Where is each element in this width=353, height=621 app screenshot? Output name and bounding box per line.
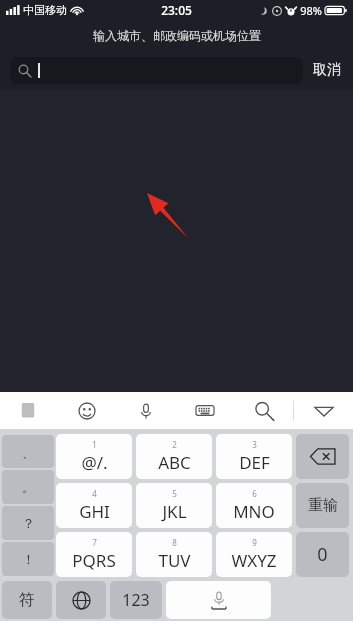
staticText: 重输 bbox=[308, 496, 338, 515]
button[interactable]: Search bbox=[234, 392, 293, 429]
staticText: 9 bbox=[252, 537, 257, 548]
staticText: 、 bbox=[22, 444, 35, 460]
button[interactable]: Emoji bbox=[58, 392, 116, 429]
staticText: @/. bbox=[81, 451, 108, 474]
button[interactable]: Keyboard settings bbox=[175, 392, 234, 429]
button[interactable]: 取消 bbox=[311, 61, 343, 79]
staticText: ABC bbox=[158, 451, 191, 474]
staticText: 5 bbox=[172, 488, 177, 499]
button[interactable]: 0 bbox=[296, 532, 349, 577]
staticText: 中国移动 bbox=[23, 3, 67, 17]
button[interactable]: 4 bbox=[56, 483, 132, 528]
staticText: PQRS bbox=[72, 549, 116, 572]
button[interactable]: Switch language bbox=[56, 581, 106, 619]
staticText: 符 bbox=[19, 590, 35, 610]
staticText: 3 bbox=[252, 439, 257, 450]
staticText: GHI bbox=[79, 500, 110, 523]
button[interactable]: 重输 bbox=[296, 483, 349, 528]
staticText: JKL bbox=[162, 500, 187, 523]
button[interactable]: 。 bbox=[2, 470, 54, 504]
button[interactable]: Input method bbox=[0, 392, 58, 429]
button[interactable]: ！ bbox=[2, 542, 54, 576]
button[interactable]: 7 bbox=[56, 532, 132, 577]
button[interactable]: Voice input bbox=[116, 392, 175, 429]
button[interactable]: 3 bbox=[216, 434, 292, 479]
button[interactable]: Space bbox=[166, 581, 271, 619]
button[interactable]: 符 bbox=[2, 581, 52, 619]
staticText: 输入城市、邮政编码或机场位置 bbox=[93, 28, 261, 43]
staticText: WXYZ bbox=[231, 549, 277, 572]
staticText: ！ bbox=[22, 551, 35, 567]
button[interactable] bbox=[10, 57, 303, 84]
button[interactable]: 123 bbox=[110, 581, 162, 619]
button[interactable]: 1 bbox=[56, 434, 132, 479]
button[interactable]: ？ bbox=[2, 506, 54, 540]
button[interactable]: 2 bbox=[136, 434, 212, 479]
button[interactable]: Delete bbox=[296, 434, 349, 479]
staticText: 8 bbox=[172, 537, 177, 548]
staticText: 123 bbox=[122, 589, 150, 611]
staticText: 6 bbox=[252, 488, 257, 499]
button[interactable]: 9 bbox=[216, 532, 292, 577]
staticText: 7 bbox=[92, 537, 97, 548]
button[interactable]: Hide keyboard bbox=[294, 392, 353, 429]
staticText: 2 bbox=[172, 439, 177, 450]
staticText: 23:05 bbox=[161, 2, 192, 18]
staticText: 取消 bbox=[313, 61, 341, 79]
staticText: 。 bbox=[22, 479, 35, 495]
staticText: ？ bbox=[22, 515, 35, 531]
button[interactable]: 8 bbox=[136, 532, 212, 577]
staticText: 4 bbox=[92, 488, 97, 499]
button[interactable]: 5 bbox=[136, 483, 212, 528]
button[interactable]: 6 bbox=[216, 483, 292, 528]
staticText: 0 bbox=[317, 542, 328, 567]
staticText: TUV bbox=[158, 549, 191, 572]
staticText: MNO bbox=[233, 500, 275, 523]
staticText: 98% bbox=[300, 3, 322, 18]
staticText: DEF bbox=[239, 451, 270, 474]
staticText: 1 bbox=[92, 439, 97, 450]
button[interactable]: 、 bbox=[2, 435, 54, 468]
